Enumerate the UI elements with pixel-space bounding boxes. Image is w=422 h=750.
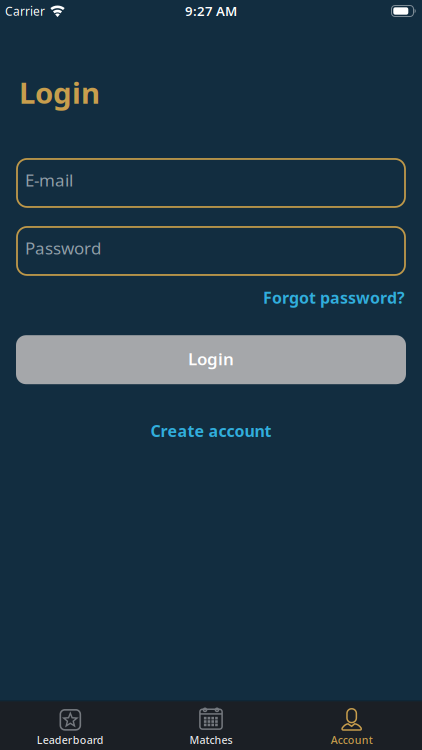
secureTextField[interactable]: Password (17, 227, 405, 275)
textField[interactable]: E-mail (17, 159, 405, 207)
button[interactable]: Leaderboard (0, 709, 141, 747)
staticText: Carrier (5, 3, 45, 19)
staticText: Create account (150, 420, 271, 441)
staticText: Password (25, 236, 101, 259)
staticText: Login (188, 347, 234, 370)
button[interactable]: Account (281, 709, 422, 747)
staticText: Forgot password? (263, 287, 405, 308)
staticText: Login (19, 73, 100, 112)
button[interactable]: Forgot password? (263, 287, 405, 308)
button[interactable]: Login (16, 335, 406, 384)
button[interactable]: Create account (150, 420, 271, 441)
staticText: Leaderboard (37, 733, 104, 747)
button[interactable]: Matches (141, 709, 281, 747)
staticText: E-mail (25, 168, 73, 191)
staticText: 9:27 AM (185, 2, 237, 20)
staticText: Account (331, 733, 373, 747)
staticText: Matches (189, 733, 232, 747)
